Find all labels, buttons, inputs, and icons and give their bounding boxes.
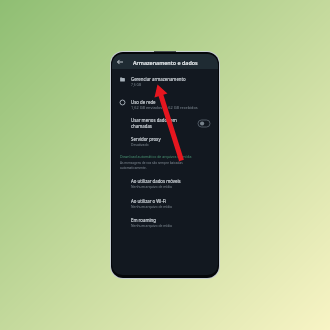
button[interactable]: Back [114,56,126,68]
button[interactable]: Servidor proxy [112,133,218,148]
staticText: Ao utilizar dados móveis [131,178,181,184]
staticText: 7,6 GB [131,82,142,87]
staticText: 1,62 GB enviados · 1,62 GB recebidos [131,105,198,110]
staticText: Ao utilizar o Wi-Fi [131,198,167,204]
staticText: chamadas [131,123,152,129]
staticText: As mensagens de voz são sempre baixadas … [120,161,183,170]
staticText: Armazenamento e dados [133,59,198,66]
staticText: Usar menos dados em [131,117,177,123]
staticText: Servidor proxy [131,136,161,142]
button[interactable]: Em roaming [112,214,218,230]
button[interactable]: Uso de rede [112,95,218,112]
staticText: Nenhum arquivo de mídia [131,204,172,209]
button[interactable]: Ao utilizar o Wi-Fi [112,195,218,211]
staticText: Download automático de arquivos de mídia [120,154,192,159]
staticText: Nenhum arquivo de mídia [131,184,172,189]
button[interactable]: Ao utilizar dados móveis [112,175,218,191]
staticText: Gerenciar armazenamento [131,76,186,82]
button[interactable]: Usar menos dados em [112,114,218,131]
button[interactable]: Gerenciar armazenamento [112,72,218,89]
staticText: Em roaming [131,217,156,223]
staticText: Uso de rede [131,99,156,105]
staticText: Nenhum arquivo de mídia [131,223,172,228]
staticText: Desativado [131,142,149,147]
